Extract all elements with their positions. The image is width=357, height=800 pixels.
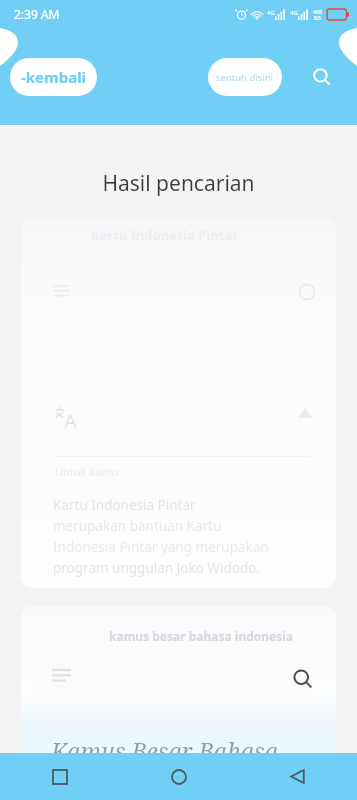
staticText: 4G [290,9,298,17]
button[interactable]: Back [238,753,357,800]
button[interactable]: Kartu Indonesia Pintar [21,218,336,588]
staticText: 406 [313,8,323,15]
staticText: kamus besar bahasa indonesia [109,628,294,644]
button[interactable]: kamus besar bahasa indonesia [21,606,336,766]
staticText: 4G [267,9,275,17]
staticText: Hasil pencarian [0,169,357,198]
button[interactable]: -kembali [10,58,97,96]
staticText: Kamus Besar Bahasa [51,735,279,766]
button[interactable]: Search [304,59,340,95]
staticText: -kembali [21,67,87,87]
staticText: merupakan bantuan Kartu [53,517,222,535]
staticText: Indonesia Pintar yang merupakan [53,538,269,556]
staticText: 2:39 AM [14,6,60,22]
button[interactable]: Home [119,753,238,800]
staticText: B/S [314,15,322,21]
staticText: sentuh disini [216,71,274,84]
button[interactable]: sentuh disini [208,58,282,96]
staticText: program unggulan Joko Widodo. [53,559,260,577]
button[interactable]: Recent apps [0,753,119,800]
staticText: Kartu Indonesia Pintar [91,226,238,244]
staticText: Kartu Indonesia Pintar [53,496,196,514]
staticText: Untuk kamu [55,464,119,479]
